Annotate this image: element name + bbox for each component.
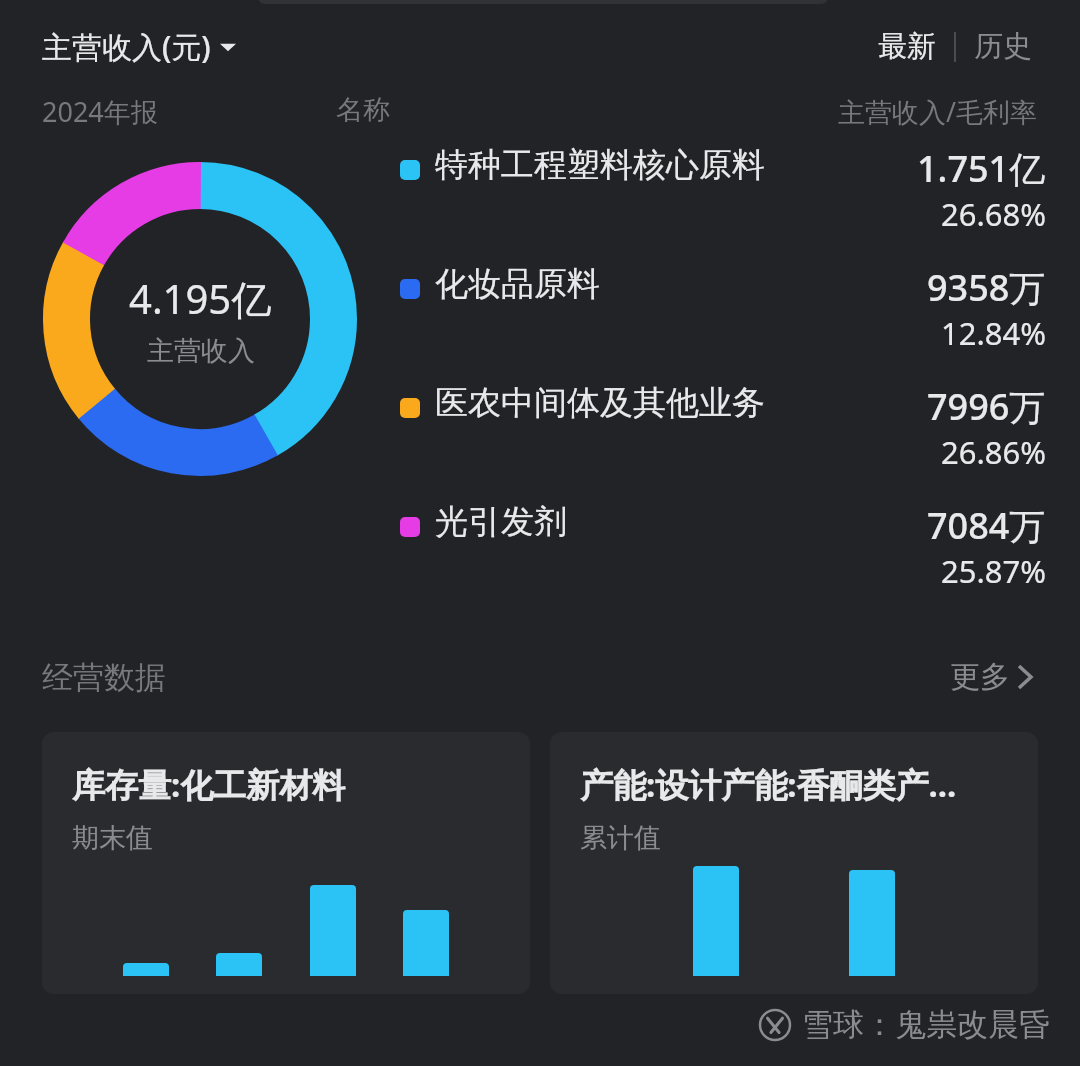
staticText: 特种工程塑料核心原料: [435, 144, 905, 186]
staticText: 主营收入: [147, 334, 255, 368]
staticText: 主营收入(元): [42, 26, 211, 67]
staticText: 7084万: [927, 501, 1046, 550]
staticText: 累计值: [580, 821, 661, 855]
button[interactable]: 库存量:化工新材料: [42, 732, 530, 994]
button[interactable]: 历史: [968, 24, 1038, 69]
button[interactable]: 特种工程塑料核心原料: [400, 144, 1046, 235]
staticText: 最新: [878, 28, 936, 65]
staticText: 期末值: [72, 821, 153, 855]
staticText: 光引发剂: [435, 501, 915, 543]
staticText: 7996万: [927, 382, 1046, 431]
button[interactable]: 产能:设计产能:香酮类产...: [550, 732, 1038, 994]
staticText: 12.84%: [941, 312, 1046, 354]
staticText: 9358万: [927, 263, 1046, 312]
staticText: 经营数据: [42, 658, 166, 697]
staticText: 雪球：鬼祟改晨昏: [802, 1005, 1050, 1044]
staticText: 库存量:化工新材料: [72, 762, 346, 807]
staticText: 医农中间体及其他业务: [435, 382, 915, 424]
staticText: 26.86%: [941, 431, 1046, 473]
button[interactable]: 更多: [944, 652, 1038, 702]
button[interactable]: 最新: [872, 24, 942, 69]
button[interactable]: 主营收入(元): [42, 22, 236, 71]
staticText: 历史: [974, 28, 1032, 65]
staticText: 更多: [950, 658, 1010, 696]
button[interactable]: 化妆品原料: [400, 263, 1046, 354]
staticText: 25.87%: [941, 550, 1046, 592]
staticText: 1.751亿: [917, 144, 1046, 193]
button[interactable]: 医农中间体及其他业务: [400, 382, 1046, 473]
staticText: 名称: [336, 93, 390, 127]
staticText: 2024年报: [42, 93, 158, 130]
button[interactable]: 光引发剂: [400, 501, 1046, 592]
staticText: 4.195亿: [129, 271, 272, 326]
staticText: 主营收入/毛利率: [838, 93, 1038, 130]
staticText: 化妆品原料: [435, 263, 915, 305]
staticText: 产能:设计产能:香酮类产...: [580, 762, 957, 807]
staticText: 26.68%: [941, 193, 1046, 235]
